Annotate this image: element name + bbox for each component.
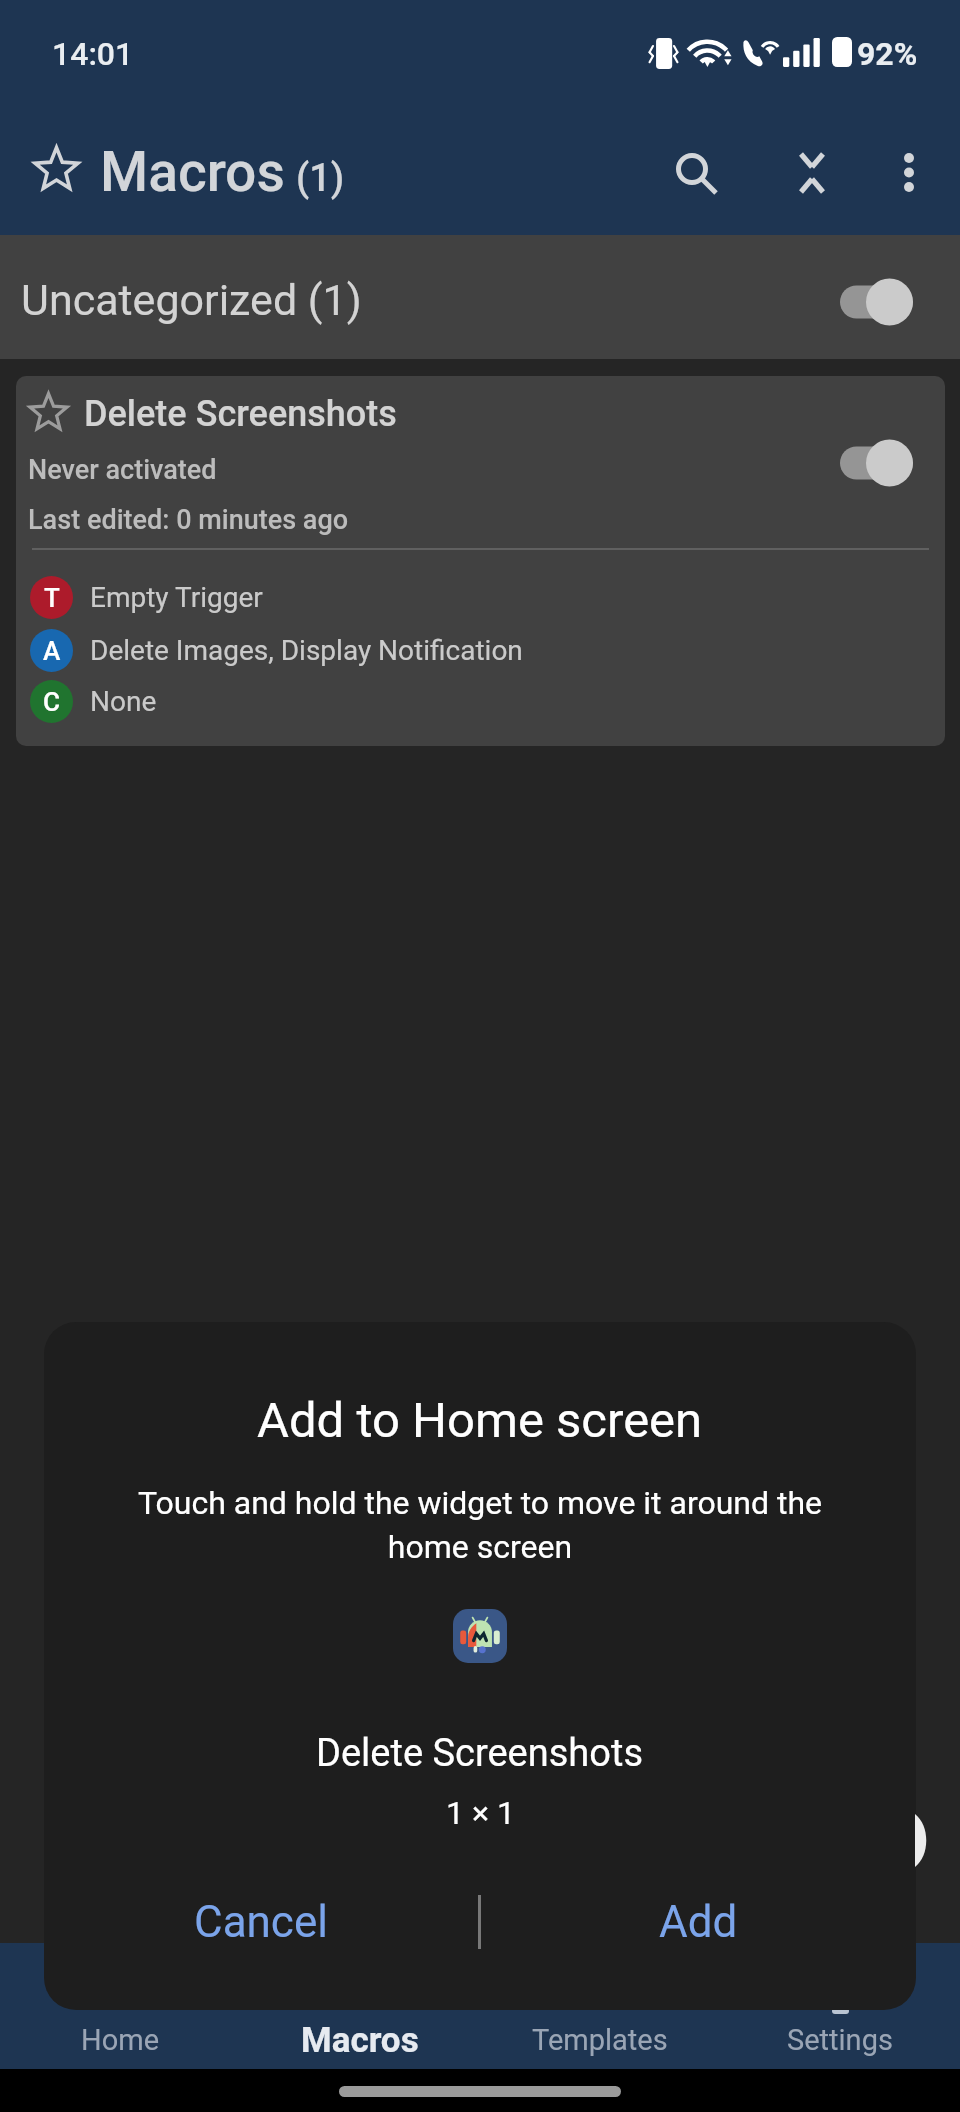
staticText: 92% (857, 35, 918, 73)
button[interactable]: Delete Screenshots (16, 376, 945, 746)
staticText: Delete Images, Display Notification (90, 634, 523, 667)
staticText: Never activated (28, 454, 217, 486)
staticText: 14:01 (52, 35, 134, 73)
staticText: Templates (532, 2023, 668, 2057)
button[interactable]: Collapse all (760, 121, 864, 225)
staticText: Delete Screenshots (316, 1731, 644, 1776)
button[interactable]: Home (0, 1943, 240, 2069)
button[interactable]: Uncategorized (1) (0, 235, 960, 359)
staticText: T (44, 583, 60, 613)
staticText: Cancel (194, 1896, 328, 1948)
button[interactable]: Macros (240, 1943, 480, 2069)
staticText: Macros (100, 140, 285, 204)
button[interactable]: Favourites (12, 125, 100, 213)
staticText: Delete Screenshots (84, 393, 397, 435)
button[interactable]: Add (481, 1862, 916, 1982)
button[interactable]: Cancel (44, 1862, 478, 1982)
button[interactable]: Templates (480, 1943, 720, 2069)
staticText: Add to Home screen (257, 1392, 703, 1449)
staticText: (1) (296, 156, 345, 201)
staticText: Settings (787, 2023, 893, 2057)
staticText: Touch and hold the widget to move it aro… (44, 1484, 916, 1566)
button[interactable]: Settings (720, 1943, 960, 2069)
staticText: Empty Trigger (90, 581, 263, 614)
staticText: Last edited: 0 minutes ago (28, 504, 349, 536)
staticText: Add (659, 1896, 738, 1948)
button[interactable]: Enabled (840, 278, 914, 326)
staticText: A (43, 636, 61, 666)
staticText: Home (81, 2023, 160, 2057)
button[interactable]: Search (648, 122, 752, 226)
staticText: 1 × 1 (446, 1794, 515, 1832)
button[interactable]: Enabled (840, 439, 914, 487)
staticText: Uncategorized (1) (21, 275, 362, 325)
staticText: Macros (301, 2020, 419, 2061)
button[interactable]: More options (857, 121, 960, 225)
staticText: C (43, 687, 60, 717)
staticText: None (90, 685, 157, 718)
